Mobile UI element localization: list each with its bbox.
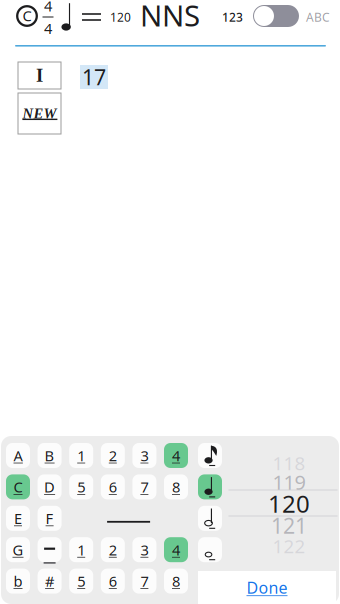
staticText: NEW [22,105,56,122]
staticText: 4 [172,446,180,465]
staticText: F [46,509,54,528]
button[interactable]: Natural note [38,537,62,562]
button[interactable]: 5 [69,474,93,499]
button[interactable]: G [6,537,30,562]
staticText: 120 [110,9,131,25]
staticText: G [12,540,23,559]
button[interactable]: 4 [164,443,188,468]
button[interactable]: 2 [101,537,125,562]
staticText: 4 [44,0,52,15]
staticText: 5 [77,571,85,591]
staticText: 122 [272,534,305,558]
staticText: b [13,571,22,591]
staticText: 1 [77,540,85,559]
button[interactable]: Note duration [198,443,222,468]
staticText: D [44,477,55,497]
button[interactable]: A [6,443,30,468]
button[interactable]: C [6,474,30,499]
button[interactable]: Note duration [198,506,222,531]
staticText: Done [246,577,287,598]
button[interactable]: 4 [164,537,188,562]
staticText: 8 [172,571,180,591]
button[interactable]: 6 [101,474,125,499]
button[interactable]: D [38,474,62,499]
staticText: 6 [109,571,117,591]
staticText: 123 [222,9,243,25]
staticText: 1 [77,446,85,465]
button[interactable]: 3 [132,537,156,562]
button[interactable]: b [6,569,30,594]
button[interactable]: Note duration [198,474,222,499]
staticText: NNS [140,0,200,34]
button[interactable]: NEW [18,93,61,134]
button[interactable]: 8 [164,474,188,499]
staticText: 6 [109,477,117,497]
staticText: 3 [140,540,148,559]
button[interactable]: 6 [101,569,125,594]
button[interactable]: 3 [132,443,156,468]
button[interactable]: Time signature [38,0,58,34]
staticText: C [13,477,22,497]
staticText: E [14,509,22,528]
staticText: 8 [172,477,180,497]
staticText: 7 [140,477,148,497]
button[interactable]: 17 [80,65,108,89]
staticText: # [45,571,54,591]
staticText: 7 [140,571,148,591]
staticText: 4 [172,540,180,559]
button[interactable]: I [18,62,61,89]
button[interactable]: Key signature [12,0,42,32]
button[interactable]: E [6,506,30,531]
button[interactable]: 5 [69,569,93,594]
staticText: 17 [82,63,106,91]
button[interactable]: Tempo [61,0,141,34]
staticText: 5 [77,477,85,497]
staticText: 121 [271,511,307,540]
button[interactable]: Switch between numbers and letters [253,5,299,27]
staticText: C [22,6,31,25]
staticText: 2 [109,446,117,465]
button[interactable]: 1 [69,443,93,468]
staticText: 119 [272,469,305,495]
button[interactable]: F [38,506,62,531]
button[interactable]: Note duration [198,537,222,562]
staticText: 120 [268,488,310,519]
button[interactable]: B [38,443,62,468]
button[interactable]: 1 [69,537,93,562]
staticText: B [45,446,55,465]
staticText: 2 [109,540,117,559]
staticText: 118 [272,451,305,475]
staticText: ABC [306,9,330,25]
staticText: A [13,446,22,465]
button[interactable]: # [38,569,62,594]
button[interactable]: 7 [132,569,156,594]
staticText: 4 [44,18,52,38]
button[interactable]: 8 [164,569,188,594]
button[interactable]: 7 [132,474,156,499]
button[interactable]: Done [198,571,336,604]
button[interactable]: 2 [101,443,125,468]
staticText: 3 [140,446,148,465]
staticText: I [36,65,43,86]
